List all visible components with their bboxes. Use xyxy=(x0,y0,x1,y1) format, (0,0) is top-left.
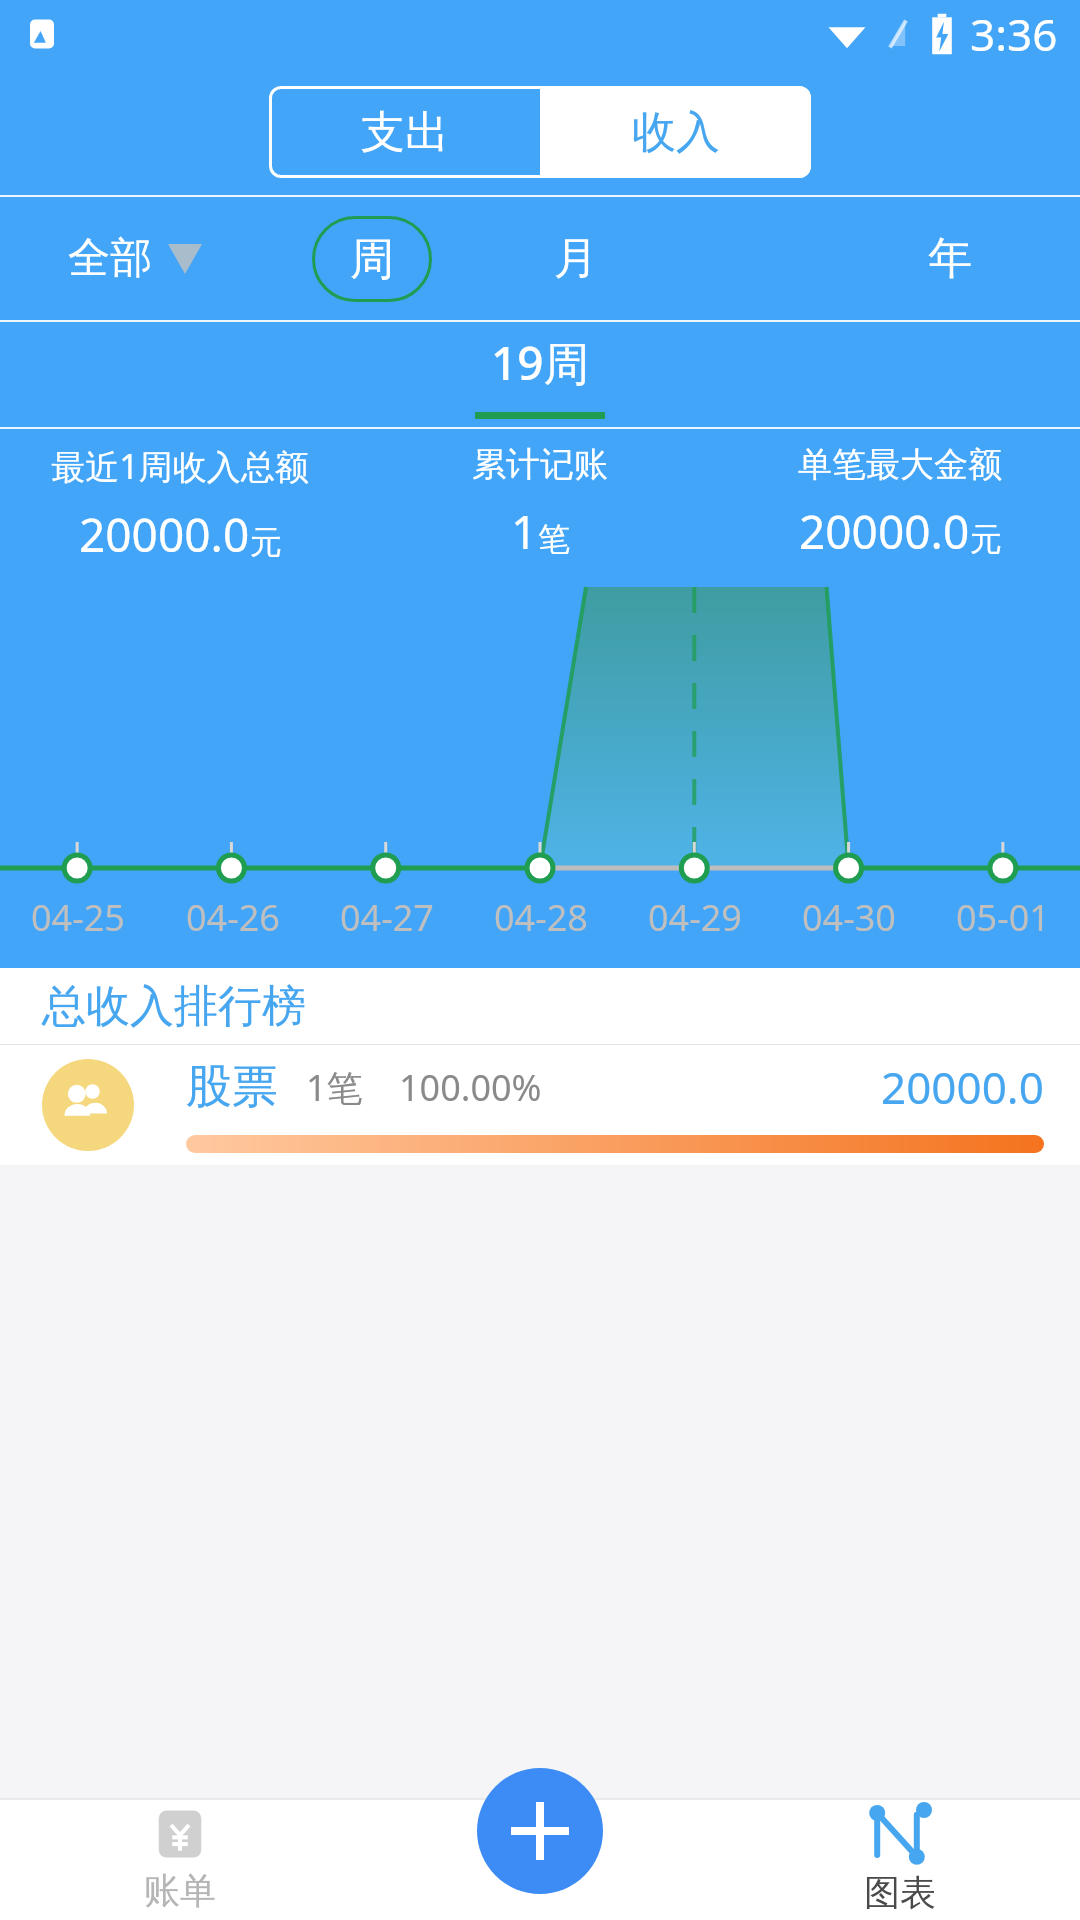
staticText: 股票 xyxy=(186,1058,278,1116)
staticText: 元 xyxy=(250,522,282,562)
staticText: 20000.0 xyxy=(881,1057,1044,1117)
staticText: 19周 xyxy=(491,331,590,394)
staticText: 最近1周收入总额 xyxy=(51,443,309,489)
staticText: 04-26 xyxy=(186,893,280,942)
staticText: 04-25 xyxy=(31,893,125,942)
staticText: 04-30 xyxy=(802,893,896,942)
staticText: 支出 xyxy=(361,105,449,160)
staticText: 收入 xyxy=(632,105,720,160)
button[interactable]: 收入 xyxy=(540,86,811,178)
staticText: 100.00% xyxy=(399,1063,542,1112)
staticText: 周 xyxy=(350,232,394,287)
staticText: 笔 xyxy=(538,519,570,559)
staticText: 20000.0 xyxy=(79,503,250,566)
staticText: 04-29 xyxy=(648,893,742,942)
button[interactable]: 全部 xyxy=(68,232,202,285)
button[interactable]: 月 xyxy=(554,231,598,286)
staticText: 04-28 xyxy=(494,893,588,942)
button[interactable]: 周 xyxy=(312,216,432,302)
button[interactable]: 图表 xyxy=(720,1798,1080,1920)
staticText: 全部 xyxy=(68,232,152,285)
staticText: 单笔最大金额 xyxy=(798,443,1002,486)
staticText: 1笔 xyxy=(306,1063,363,1112)
staticText: 月 xyxy=(554,231,598,286)
button[interactable]: 股票 xyxy=(0,1045,1080,1165)
staticText: 元 xyxy=(970,519,1002,559)
button[interactable]: 支出 xyxy=(269,86,540,178)
staticText: 05-01 xyxy=(956,893,1050,942)
button[interactable]: 19周 xyxy=(475,331,605,419)
staticText: 20000.0 xyxy=(799,500,970,563)
button[interactable]: 年 xyxy=(928,231,972,286)
staticText: 3:36 xyxy=(970,4,1058,64)
staticText: 累计记账 xyxy=(472,443,608,486)
button[interactable]: Add record xyxy=(477,1768,603,1894)
staticText: 1 xyxy=(511,500,538,563)
staticText: 总收入排行榜 xyxy=(42,979,306,1034)
staticText: 图表 xyxy=(864,1870,936,1915)
staticText: 账单 xyxy=(144,1868,216,1913)
button[interactable]: 账单 xyxy=(0,1798,360,1920)
staticText: 年 xyxy=(928,231,972,286)
staticText: 04-27 xyxy=(340,893,434,942)
